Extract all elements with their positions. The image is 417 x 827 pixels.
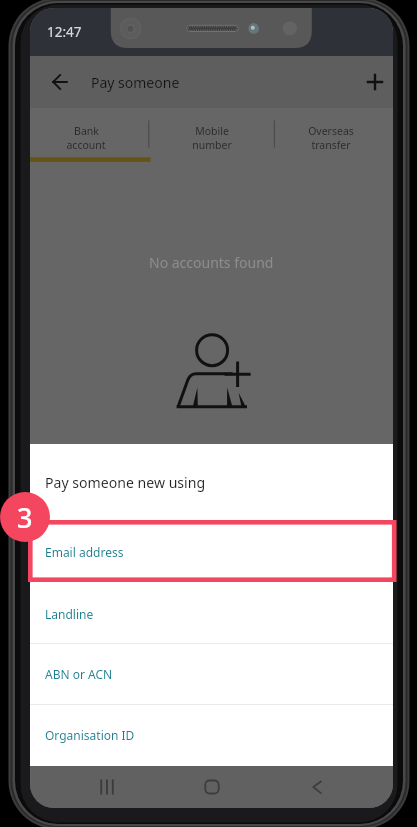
button[interactable]: Back: [48, 70, 72, 94]
button[interactable]: Organisation ID: [30, 703, 393, 764]
button[interactable]: Home: [197, 772, 227, 802]
staticText: ABN or ACN: [45, 666, 113, 682]
button[interactable]: Back: [302, 772, 332, 802]
button[interactable]: Mobile: [149, 108, 275, 168]
staticText: transfer: [311, 138, 351, 152]
button[interactable]: Email address: [30, 520, 393, 581]
button[interactable]: Landline: [30, 582, 393, 643]
staticText: Landline: [45, 606, 94, 622]
staticText: Mobile: [195, 124, 229, 138]
button[interactable]: Add: [360, 67, 390, 97]
staticText: 12:47: [47, 23, 82, 41]
staticText: number: [192, 138, 232, 152]
button[interactable]: Recent apps: [92, 772, 122, 802]
button[interactable]: ABN or ACN: [30, 642, 393, 703]
staticText: account: [66, 138, 106, 152]
staticText: Organisation ID: [45, 727, 135, 743]
staticText: Bank: [74, 124, 99, 138]
button[interactable]: Overseas: [275, 108, 386, 168]
button[interactable]: Bank: [30, 108, 149, 168]
staticText: Pay someone: [91, 73, 180, 92]
staticText: Pay someone new using: [45, 473, 206, 492]
staticText: Email address: [45, 544, 124, 560]
staticText: Overseas: [308, 124, 354, 138]
staticText: 3: [17, 499, 33, 536]
staticText: No accounts found: [149, 253, 274, 272]
